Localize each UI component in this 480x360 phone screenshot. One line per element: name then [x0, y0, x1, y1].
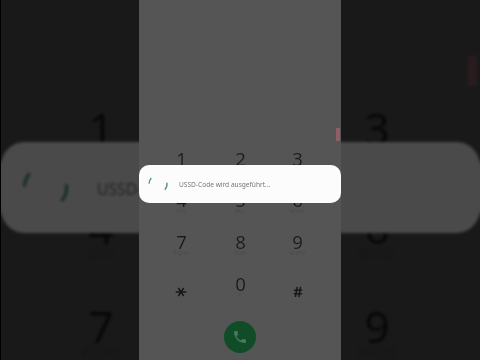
staticText: 1 [88, 98, 114, 158]
button[interactable]: 7 [152, 221, 210, 263]
staticText: USSD-Code wird ausgeführt... [179, 180, 271, 189]
staticText: 6 [364, 197, 390, 257]
staticText: ABC [227, 145, 256, 163]
staticText: 1 [176, 146, 187, 171]
button[interactable]: 5 [211, 179, 269, 221]
staticText: 7 [176, 229, 187, 254]
staticText: 4 [88, 197, 114, 257]
staticText: 9 [292, 229, 303, 254]
button[interactable]: 6 [268, 179, 326, 221]
staticText: WXYZ [289, 249, 306, 256]
button[interactable]: 0 [211, 263, 269, 305]
staticText: 4 [176, 187, 187, 212]
button[interactable]: USSD-Code wird ausgeführt... [139, 165, 341, 203]
staticText: 2 [235, 146, 246, 171]
staticText: TUV [227, 343, 256, 360]
staticText: 0 [235, 271, 246, 296]
staticText: USSD-Code wird ausgeführt... [97, 178, 315, 199]
button[interactable] [268, 263, 326, 305]
button[interactable]: 3 [268, 138, 326, 180]
button[interactable] [152, 263, 210, 305]
button[interactable]: 9 [268, 221, 326, 263]
staticText: 5 [235, 187, 246, 212]
staticText: 5 [228, 197, 254, 257]
button[interactable]: 8 [211, 221, 269, 263]
staticText: 8 [235, 229, 246, 254]
staticText: 3 [292, 146, 303, 171]
staticText: MNO [289, 207, 305, 214]
staticText: 3 [364, 98, 390, 158]
staticText: 9 [364, 296, 390, 356]
button[interactable]: 4 [152, 179, 210, 221]
button[interactable]: Call [224, 321, 256, 353]
staticText: 6 [292, 187, 303, 212]
staticText: 7 [88, 296, 114, 356]
button[interactable]: 2 [211, 138, 269, 180]
button[interactable]: 1 [152, 138, 210, 180]
staticText: 8 [228, 296, 254, 356]
staticText: JKL [230, 244, 253, 262]
staticText: 2 [228, 98, 254, 158]
